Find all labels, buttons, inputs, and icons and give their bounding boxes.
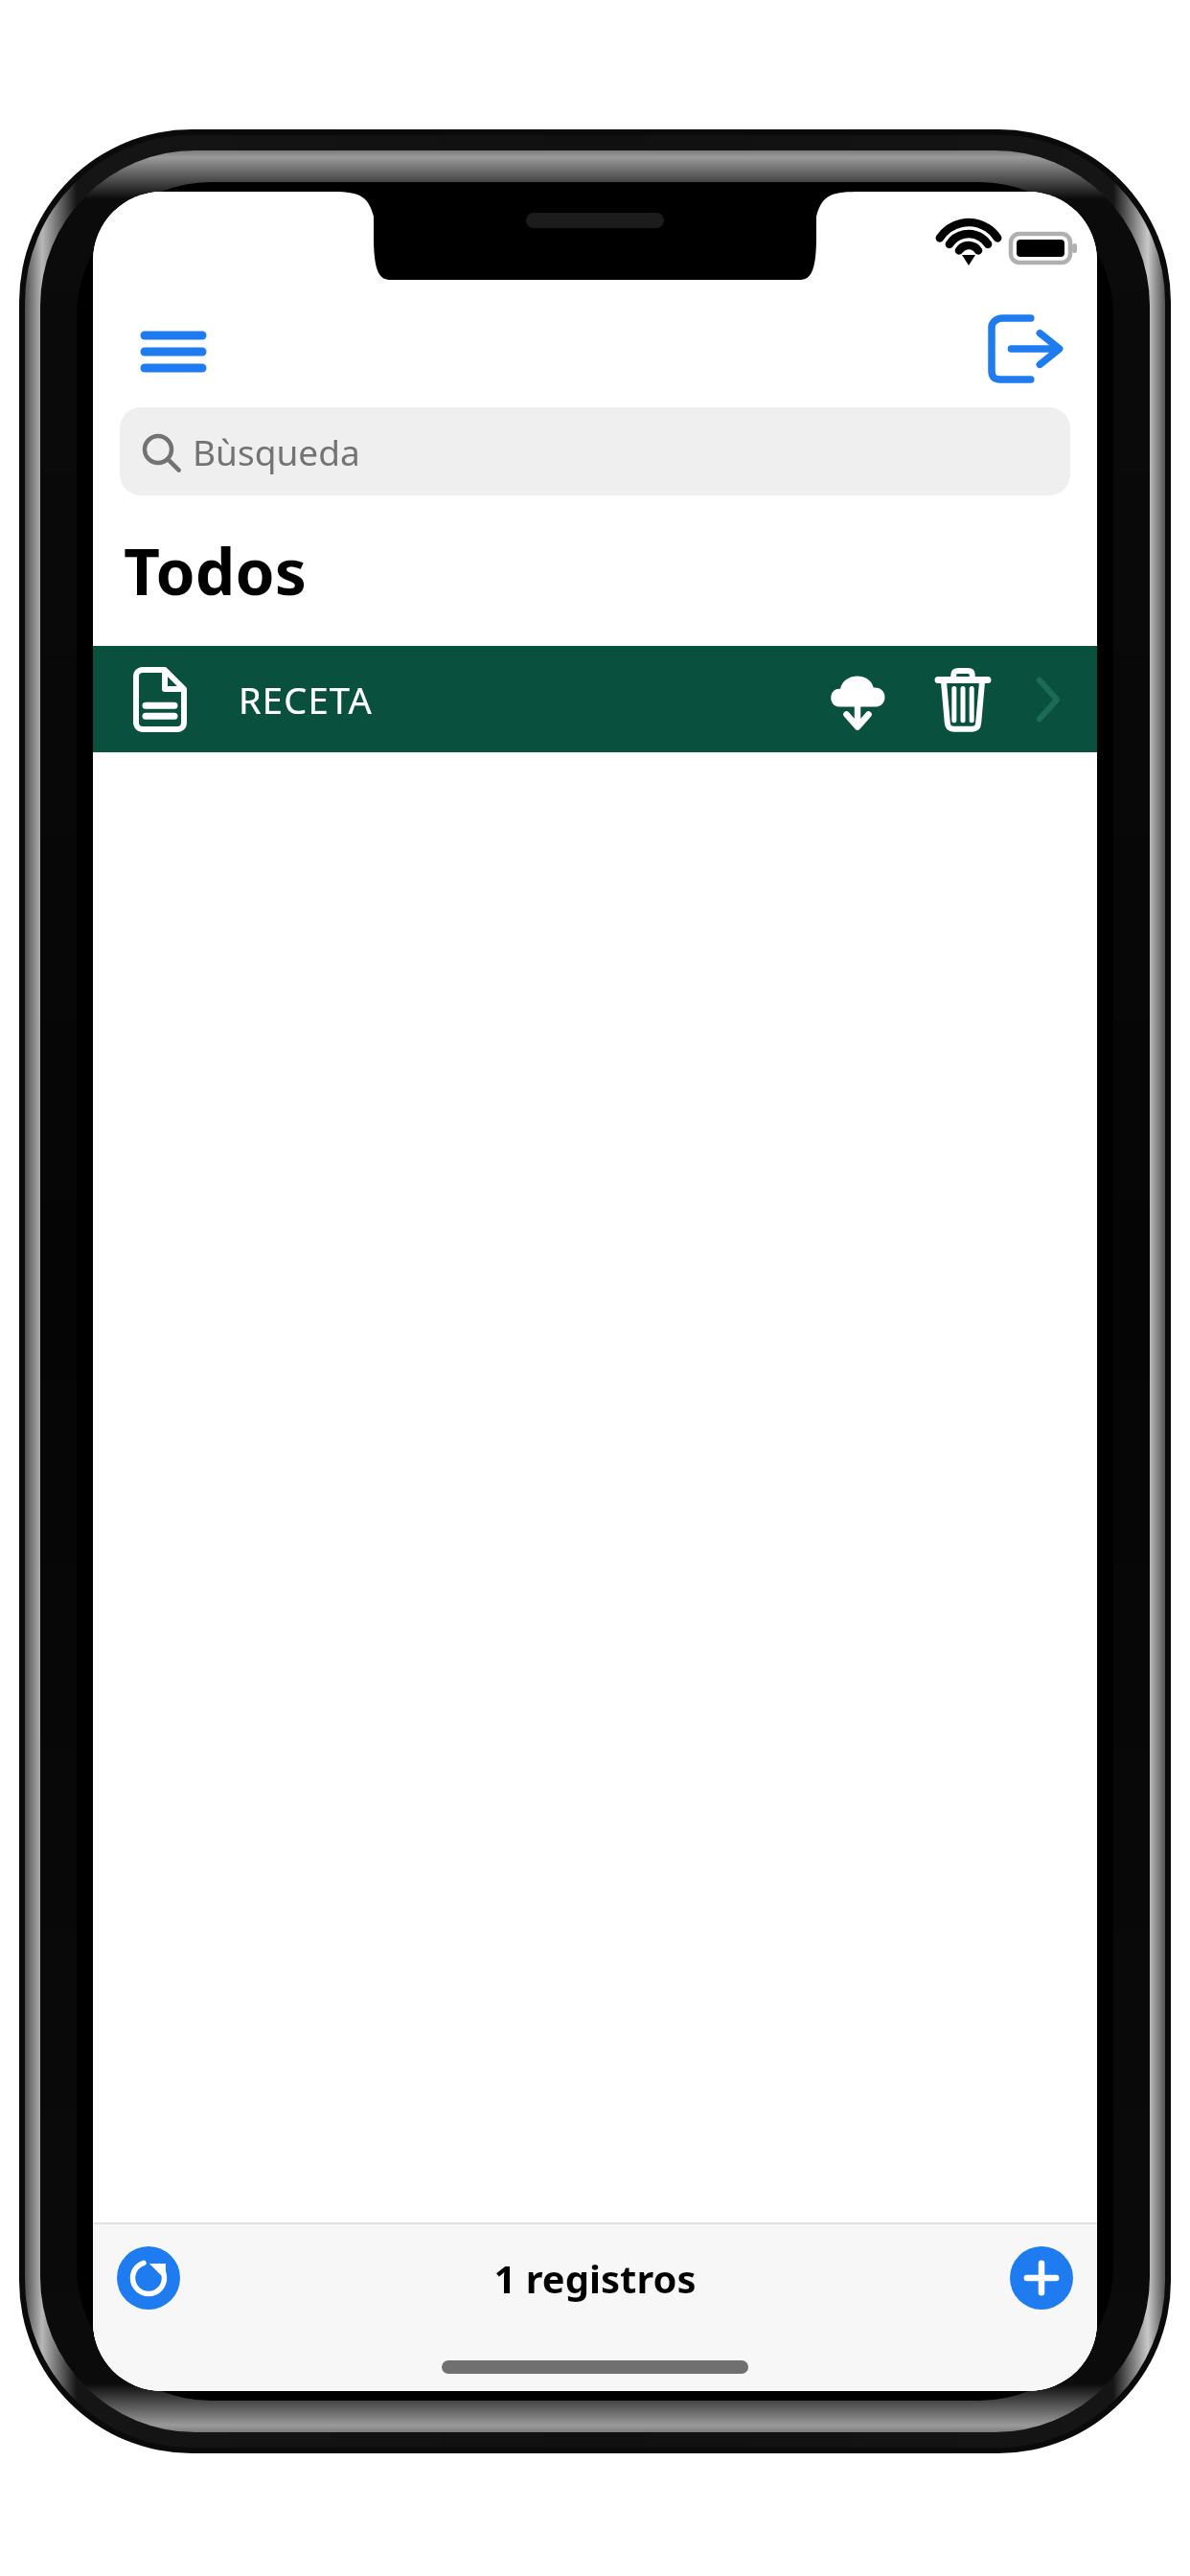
staticText: 1 registros xyxy=(493,2252,697,2304)
staticText: RECETA xyxy=(239,675,373,724)
button[interactable]: Add record xyxy=(1007,2243,1076,2312)
staticText: Bùsqueda xyxy=(193,427,360,475)
button[interactable]: Download xyxy=(813,655,902,744)
button[interactable]: Logout xyxy=(974,299,1074,399)
button[interactable]: Menu xyxy=(127,309,219,393)
button[interactable]: Open record xyxy=(1015,655,1082,744)
button[interactable]: Delete xyxy=(919,655,1007,744)
button[interactable]: Bùsqueda xyxy=(120,407,1070,495)
button[interactable]: RECETA xyxy=(93,646,1097,752)
staticText: Todos xyxy=(124,527,307,613)
button[interactable]: Refresh xyxy=(114,2243,183,2312)
